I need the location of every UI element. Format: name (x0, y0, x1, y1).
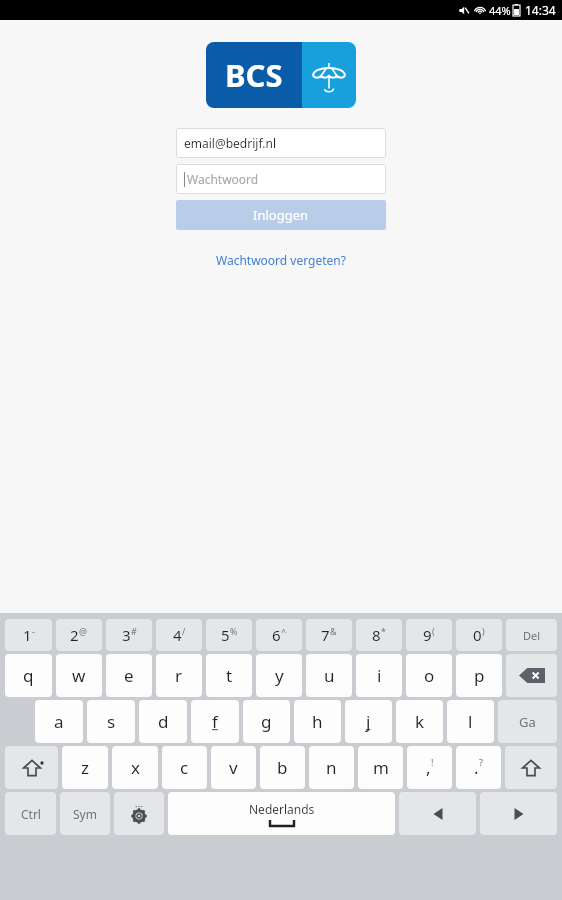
staticText: v (229, 756, 238, 779)
button[interactable]: Move cursor right (480, 792, 557, 835)
staticText: j (366, 710, 371, 733)
button[interactable]: l (447, 700, 494, 743)
staticText: ) (482, 625, 485, 637)
button[interactable]: 9 (406, 619, 452, 651)
button[interactable]: Shift (5, 746, 58, 789)
button[interactable]: g (243, 700, 290, 743)
button[interactable]: Inloggen (176, 200, 386, 230)
button[interactable]: 2 (56, 619, 102, 651)
staticText: r (175, 664, 183, 687)
button[interactable]: q (5, 654, 52, 697)
staticText: k (415, 710, 425, 733)
staticText: ! (431, 756, 434, 768)
button[interactable]: 8 (356, 619, 402, 651)
button[interactable]: Move cursor left (399, 792, 476, 835)
staticText: Del (523, 628, 541, 643)
button[interactable]: 6 (256, 619, 302, 651)
staticText: m (373, 756, 389, 779)
button[interactable]: Keyboard settings (114, 792, 164, 835)
staticText: , (426, 756, 431, 779)
button[interactable]: email@bedrijf.nl (176, 128, 386, 158)
staticText: . (474, 756, 479, 779)
button[interactable]: n (309, 746, 354, 789)
button[interactable]: e (106, 654, 152, 697)
button[interactable]: 1 (5, 619, 52, 651)
button[interactable]: Ga (498, 700, 557, 743)
button[interactable]: x (112, 746, 158, 789)
staticText: 14:34 (525, 2, 556, 18)
button[interactable]: d (139, 700, 187, 743)
staticText: Wachtwoord vergeten? (216, 252, 346, 268)
button[interactable]: Wachtwoord vergeten? (208, 248, 354, 272)
button[interactable]: Backspace (506, 654, 557, 697)
button[interactable]: b (260, 746, 305, 789)
staticText: u (324, 664, 335, 687)
button[interactable]: c (162, 746, 207, 789)
staticText: l (468, 710, 473, 733)
staticText: & (330, 625, 337, 637)
staticText: Ctrl (21, 806, 41, 822)
staticText: Sym (73, 806, 97, 822)
staticText: 4 (173, 625, 182, 645)
staticText: q (23, 664, 34, 687)
button[interactable]: 3 (106, 619, 152, 651)
staticText: x (131, 756, 140, 779)
button[interactable]: p (456, 654, 502, 697)
button[interactable]: 7 (306, 619, 352, 651)
button[interactable]: Del (506, 619, 557, 651)
staticText: a (54, 710, 64, 733)
staticText: 5 (221, 625, 230, 645)
staticText: 2 (70, 625, 79, 645)
staticText: w (72, 664, 86, 687)
button[interactable]: . (456, 746, 501, 789)
button[interactable]: 0 (456, 619, 502, 651)
button[interactable]: i (356, 654, 402, 697)
button[interactable]: Sym (60, 792, 110, 835)
staticText: e (124, 664, 134, 687)
button[interactable]: 4 (156, 619, 202, 651)
staticText: 9 (423, 625, 432, 645)
staticText: 3 (122, 625, 131, 645)
button[interactable]: s (87, 700, 135, 743)
staticText: b (277, 756, 288, 779)
button[interactable]: k (396, 700, 443, 743)
button[interactable]: z (62, 746, 108, 789)
button[interactable]: Space (168, 792, 395, 835)
button[interactable]: f (191, 700, 239, 743)
staticText: f (212, 710, 218, 733)
button[interactable]: Ctrl (5, 792, 56, 835)
staticText: / (182, 625, 186, 637)
staticText: 8 (372, 625, 381, 645)
staticText: z (81, 756, 89, 779)
staticText: d (158, 710, 169, 733)
button[interactable]: a (35, 700, 83, 743)
staticText: Inloggen (253, 206, 309, 224)
button[interactable]: j (345, 700, 392, 743)
button[interactable]: t (206, 654, 252, 697)
button[interactable]: 5 (206, 619, 252, 651)
button[interactable]: u (306, 654, 352, 697)
staticText: c (180, 756, 189, 779)
staticText: % (230, 625, 238, 637)
button[interactable]: Shift (505, 746, 557, 789)
button[interactable]: y (256, 654, 302, 697)
staticText: * (381, 625, 386, 637)
button[interactable]: r (156, 654, 202, 697)
button[interactable]: h (294, 700, 341, 743)
staticText: ( (432, 625, 435, 637)
staticText: Wachtwoord (187, 171, 259, 187)
staticText: n (326, 756, 337, 779)
staticText: Ga (519, 713, 536, 731)
button[interactable]: , (407, 746, 452, 789)
staticText: h (312, 710, 323, 733)
staticText: - (32, 625, 35, 637)
staticText: 7 (321, 625, 330, 645)
button[interactable]: m (358, 746, 403, 789)
button[interactable]: w (56, 654, 102, 697)
staticText: s (107, 710, 116, 733)
button[interactable]: v (211, 746, 256, 789)
staticText: @ (79, 625, 88, 637)
button[interactable]: Wachtwoord (176, 164, 386, 194)
staticText: email@bedrijf.nl (184, 135, 276, 151)
button[interactable]: o (406, 654, 452, 697)
